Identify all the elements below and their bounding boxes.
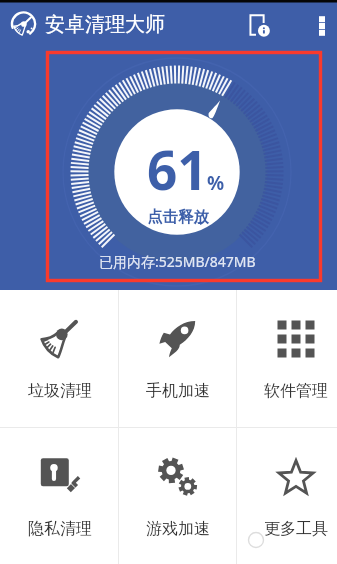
button[interactable]: 游戏加速 (119, 428, 237, 564)
staticText: 游戏加速 (146, 519, 210, 539)
staticText: 61 (147, 133, 208, 205)
button[interactable]: 垃圾清理 (1, 290, 119, 427)
staticText: 垃圾清理 (28, 381, 92, 401)
staticText: 更多工具 (264, 519, 328, 539)
button[interactable]: 软件管理 (237, 290, 337, 427)
button[interactable]: Device info (243, 7, 279, 43)
button[interactable]: 61 (0, 0, 337, 290)
button[interactable]: 更多工具 (237, 428, 337, 564)
staticText: 软件管理 (264, 381, 328, 401)
button[interactable]: 隐私清理 (1, 428, 119, 564)
button[interactable]: More options (307, 10, 337, 40)
button[interactable]: 手机加速 (119, 290, 237, 427)
staticText: 已用内存:525MB/847MB (99, 252, 256, 271)
staticText: 点击释放 (147, 207, 209, 227)
button[interactable]: App logo (10, 11, 37, 38)
staticText: 隐私清理 (28, 519, 92, 539)
staticText: 手机加速 (146, 381, 210, 401)
staticText: % (207, 170, 225, 196)
staticText: 安卓清理大师 (45, 12, 165, 37)
